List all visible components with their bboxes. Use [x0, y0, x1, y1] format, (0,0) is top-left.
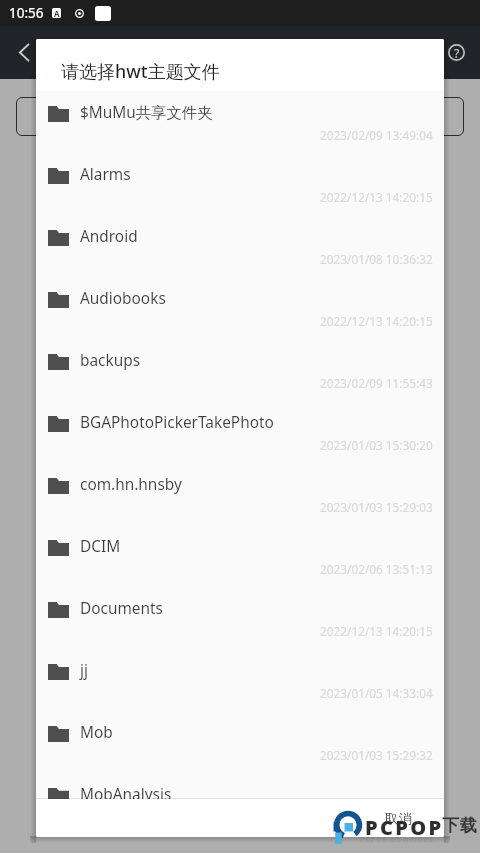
button[interactable]: com.hn.hnsby [36, 463, 444, 525]
staticText: 2023/01/03 15:29:32 [320, 747, 433, 763]
staticText: backups [80, 350, 141, 371]
staticText: 10:56 [9, 4, 44, 22]
staticText: ? [454, 45, 460, 61]
button[interactable]: jj [36, 649, 444, 711]
staticText: BGAPhotoPickerTakePhoto [80, 412, 274, 433]
staticText: jj [80, 660, 88, 681]
staticText: Audiobooks [80, 288, 166, 309]
staticText: Mob [80, 722, 113, 743]
staticText: 请选择hwt主题文件 [61, 59, 220, 84]
staticText: MobAnalysis [80, 784, 172, 799]
staticText: 2022/12/13 14:20:15 [320, 623, 433, 639]
button[interactable]: Back [0, 26, 47, 79]
staticText: 取消 [385, 810, 412, 827]
button[interactable]: 取消 [377, 804, 420, 833]
staticText: $MuMu共享文件夹 [80, 102, 213, 123]
staticText: 下载 [442, 815, 477, 836]
staticText: 2022/12/13 14:20:15 [320, 189, 433, 205]
button[interactable]: Audiobooks [36, 277, 444, 339]
button[interactable]: Help [433, 26, 480, 79]
staticText: DCIM [80, 536, 121, 557]
staticText: PCPOP [365, 814, 444, 841]
staticText: 2023/01/05 14:33:04 [320, 685, 433, 701]
staticText: 2023/01/03 15:30:20 [320, 437, 433, 453]
button[interactable]: Android [36, 215, 444, 277]
staticText: PCPOP Download [360, 835, 434, 845]
button[interactable]: BGAPhotoPickerTakePhoto [36, 401, 444, 463]
button[interactable]: backups [36, 339, 444, 401]
staticText: Alarms [80, 164, 131, 185]
staticText: 2023/01/03 15:29:03 [320, 499, 433, 515]
button[interactable]: Documents [36, 587, 444, 649]
button[interactable]: DCIM [36, 525, 444, 587]
button[interactable]: MobAnalysis [36, 773, 444, 799]
staticText: 2023/01/08 10:36:32 [320, 251, 433, 267]
button[interactable]: Alarms [36, 153, 444, 215]
button[interactable]: $MuMu共享文件夹 [36, 91, 444, 153]
staticText: 2023/02/06 13:51:13 [320, 561, 433, 577]
button[interactable]: Mob [36, 711, 444, 773]
staticText: 2022/12/13 14:20:15 [320, 313, 433, 329]
staticText: 2023/02/09 13:49:04 [320, 127, 433, 143]
staticText: com.hn.hnsby [80, 474, 182, 495]
staticText: 2023/02/09 11:55:43 [320, 375, 433, 391]
staticText: Documents [80, 598, 163, 619]
staticText: A [54, 8, 60, 18]
staticText: Android [80, 226, 138, 247]
